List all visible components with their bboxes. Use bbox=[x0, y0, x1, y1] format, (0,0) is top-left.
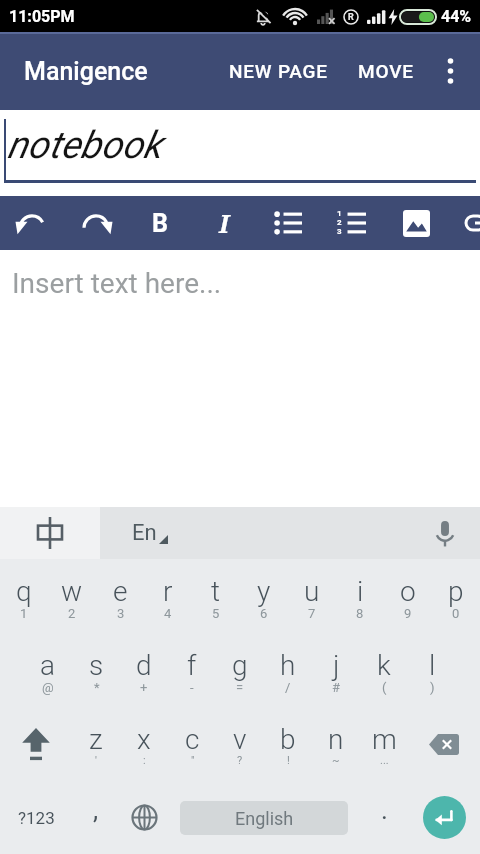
staticText: ? bbox=[237, 754, 243, 767]
button[interactable]: o bbox=[384, 559, 432, 633]
button[interactable]: MOVE bbox=[352, 46, 420, 96]
staticText: . bbox=[381, 795, 388, 825]
staticText: 44% bbox=[441, 7, 472, 26]
button[interactable] bbox=[449, 196, 480, 250]
button[interactable]: q bbox=[0, 559, 48, 633]
staticText: v bbox=[233, 723, 247, 756]
staticText: + bbox=[140, 680, 148, 695]
button[interactable]: I bbox=[192, 196, 256, 250]
button[interactable]: m bbox=[360, 707, 408, 781]
button[interactable] bbox=[0, 707, 72, 781]
button[interactable]: B bbox=[128, 196, 192, 250]
staticText: 1 bbox=[337, 209, 342, 218]
staticText: B bbox=[152, 209, 168, 238]
staticText: ?123 bbox=[18, 808, 55, 828]
button[interactable]: a bbox=[24, 633, 72, 707]
staticText: w bbox=[61, 575, 83, 608]
button[interactable] bbox=[408, 707, 480, 781]
staticText: , bbox=[93, 795, 99, 825]
staticText: k bbox=[377, 649, 391, 682]
staticText: o bbox=[400, 575, 416, 608]
staticText: Insert text here... bbox=[12, 267, 222, 300]
staticText: j bbox=[333, 649, 340, 682]
button[interactable] bbox=[436, 520, 454, 547]
button[interactable]: j bbox=[312, 633, 360, 707]
staticText: 0 bbox=[452, 606, 460, 621]
staticText: z bbox=[89, 723, 103, 756]
button[interactable] bbox=[120, 781, 168, 854]
staticText: u bbox=[304, 575, 320, 608]
staticText: 3 bbox=[117, 606, 125, 621]
staticText: i bbox=[357, 575, 364, 608]
staticText: q bbox=[16, 575, 32, 608]
staticText: ~ bbox=[332, 754, 340, 767]
button[interactable] bbox=[0, 507, 100, 559]
staticText: MOVE bbox=[358, 60, 414, 82]
button[interactable] bbox=[440, 50, 461, 92]
staticText: p bbox=[448, 575, 464, 608]
button[interactable]: g bbox=[216, 633, 264, 707]
button[interactable]: k bbox=[360, 633, 408, 707]
button[interactable]: z bbox=[72, 707, 120, 781]
button[interactable]: d bbox=[120, 633, 168, 707]
staticText: f bbox=[187, 649, 197, 682]
staticText: NEW PAGE bbox=[229, 60, 328, 82]
staticText: n bbox=[328, 723, 344, 756]
button[interactable]: p bbox=[432, 559, 480, 633]
staticText: 7 bbox=[308, 606, 316, 621]
staticText: s bbox=[89, 649, 104, 682]
staticText: ... bbox=[380, 754, 389, 767]
staticText: ( bbox=[382, 680, 387, 695]
staticText: x bbox=[137, 723, 151, 756]
staticText: / bbox=[285, 680, 291, 695]
staticText: b bbox=[280, 723, 296, 756]
button[interactable]: . bbox=[360, 781, 408, 854]
staticText: y bbox=[257, 575, 271, 608]
button[interactable] bbox=[64, 196, 128, 250]
button[interactable]: 1 bbox=[320, 196, 384, 250]
button[interactable]: u bbox=[288, 559, 336, 633]
staticText: # bbox=[332, 680, 341, 695]
staticText: @ bbox=[42, 680, 54, 695]
staticText: English bbox=[235, 808, 294, 829]
button[interactable]: En bbox=[132, 520, 166, 546]
button[interactable] bbox=[384, 196, 448, 250]
staticText: l bbox=[429, 649, 436, 682]
button[interactable]: b bbox=[264, 707, 312, 781]
staticText: ! bbox=[287, 754, 290, 767]
staticText: 2 bbox=[337, 218, 342, 227]
button[interactable] bbox=[256, 196, 320, 250]
staticText: d bbox=[136, 649, 152, 682]
button[interactable]: r bbox=[144, 559, 192, 633]
button[interactable]: NEW PAGE bbox=[223, 46, 334, 96]
button[interactable]: , bbox=[72, 781, 120, 854]
button[interactable]: t bbox=[192, 559, 240, 633]
button[interactable]: x bbox=[120, 707, 168, 781]
staticText: 2 bbox=[68, 606, 76, 621]
staticText: m bbox=[372, 723, 397, 756]
button[interactable] bbox=[0, 196, 64, 250]
staticText: : bbox=[143, 754, 146, 767]
button[interactable]: English bbox=[168, 781, 360, 854]
button[interactable]: c bbox=[168, 707, 216, 781]
staticText: ) bbox=[430, 680, 435, 695]
button[interactable]: w bbox=[48, 559, 96, 633]
button[interactable]: h bbox=[264, 633, 312, 707]
button[interactable]: ?123 bbox=[0, 781, 72, 854]
staticText: r bbox=[163, 575, 173, 608]
button[interactable]: e bbox=[96, 559, 144, 633]
staticText: ' bbox=[95, 754, 97, 767]
staticText: 11:05PM bbox=[9, 7, 75, 26]
button[interactable]: l bbox=[408, 633, 456, 707]
button[interactable]: y bbox=[240, 559, 288, 633]
staticText: 8 bbox=[356, 606, 364, 621]
button[interactable]: v bbox=[216, 707, 264, 781]
button[interactable]: f bbox=[168, 633, 216, 707]
button[interactable]: n bbox=[312, 707, 360, 781]
button[interactable] bbox=[408, 781, 480, 854]
staticText: 1 bbox=[20, 606, 28, 621]
button[interactable]: s bbox=[72, 633, 120, 707]
button[interactable]: i bbox=[336, 559, 384, 633]
staticText: " bbox=[191, 754, 195, 767]
staticText: notebook bbox=[7, 123, 162, 168]
